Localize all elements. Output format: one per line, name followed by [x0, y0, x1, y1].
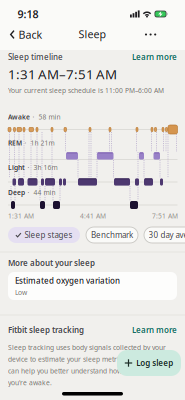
- staticText: Deep: [8, 188, 25, 197]
- staticText: Back: [18, 27, 42, 42]
- button[interactable]: Log sleep: [117, 350, 181, 376]
- button[interactable]: 30 day averages: [144, 227, 185, 243]
- staticText: Learn more: [132, 52, 177, 62]
- staticText: Fitbit sleep tracking: [8, 325, 84, 335]
- staticText: device to estimate your sleep metrics. T…: [8, 355, 173, 364]
- staticText: · 44 min: [27, 188, 55, 197]
- staticText: you're awake.: [8, 378, 52, 387]
- staticText: Your current sleep schedule is 11:00 PM–…: [8, 86, 164, 95]
- button[interactable]: Estimated oxygen variation: [8, 272, 177, 300]
- staticText: 7:51 AM: [152, 212, 178, 220]
- staticText: Light: [8, 163, 25, 172]
- staticText: Sleep timeline: [8, 52, 63, 62]
- button[interactable]: Back: [5, 26, 47, 42]
- button[interactable]: Learn more: [132, 52, 177, 62]
- staticText: 4:41 AM: [80, 212, 106, 220]
- button[interactable]: Benchmark: [86, 227, 138, 243]
- button[interactable]: Learn more: [132, 325, 177, 335]
- staticText: can help you better understand how well …: [8, 366, 169, 375]
- staticText: Log sleep: [136, 358, 173, 368]
- staticText: · 3h 16m: [27, 163, 57, 172]
- staticText: Estimated oxygen variation: [15, 275, 120, 286]
- button[interactable]: More options: [143, 31, 158, 39]
- staticText: Sleep tracking uses body signals collect…: [8, 343, 166, 352]
- staticText: More about your sleep: [8, 258, 95, 268]
- button[interactable]: Sleep stages: [8, 227, 80, 243]
- staticText: · 1h 21m: [24, 139, 54, 147]
- staticText: 30 day averages: [148, 230, 185, 240]
- staticText: REM: [8, 139, 22, 147]
- staticText: 1:31 AM–7:51 AM: [8, 65, 117, 83]
- staticText: · 58 min: [32, 113, 60, 121]
- staticText: Low: [15, 288, 27, 297]
- staticText: Learn more: [132, 325, 177, 335]
- staticText: Awake: [8, 113, 30, 121]
- staticText: 9:18: [17, 7, 38, 21]
- staticText: Sleep stages: [24, 230, 72, 240]
- staticText: Benchmark: [91, 230, 133, 240]
- staticText: 1:31 AM: [8, 212, 34, 220]
- staticText: Sleep: [78, 27, 106, 41]
